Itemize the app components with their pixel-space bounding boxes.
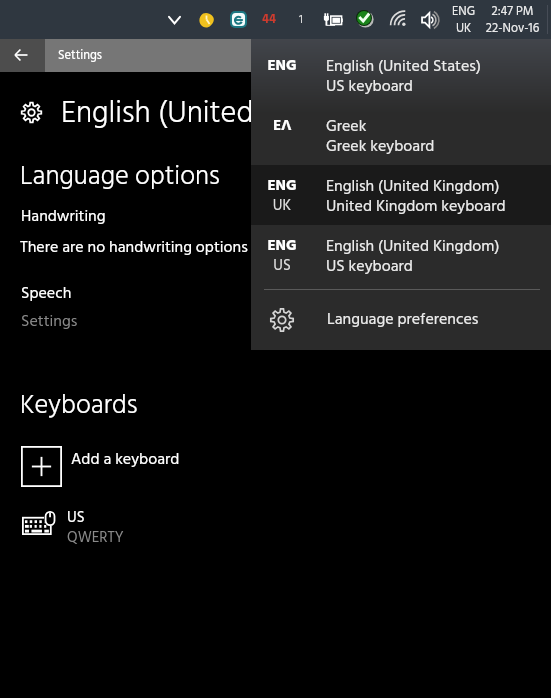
staticText: QWERTY	[67, 526, 124, 550]
button[interactable]: ENG	[448, 0, 479, 39]
staticText: ΕΛ	[242, 114, 322, 134]
button[interactable]: US	[21, 507, 236, 539]
staticText: 44	[262, 10, 277, 30]
button[interactable]: Browser	[228, 0, 248, 39]
staticText: Add a keyboard	[71, 447, 180, 473]
button[interactable]: ENG	[251, 45, 551, 105]
staticText: UK	[448, 19, 479, 39]
staticText: US	[242, 254, 322, 278]
staticText: Speech	[21, 281, 72, 307]
staticText: Language preferences	[327, 307, 479, 333]
staticText: Greek	[326, 114, 367, 140]
button[interactable]: ΕΛ	[251, 105, 551, 165]
staticText: Greek keyboard	[326, 134, 435, 160]
button[interactable]: Show hidden icons	[163, 0, 186, 39]
staticText: US keyboard	[326, 254, 413, 280]
button[interactable]: 2:47 PM	[482, 0, 543, 39]
button[interactable]: Security status OK	[355, 0, 376, 39]
button[interactable]: Back	[0, 39, 45, 72]
staticText: Settings	[58, 46, 102, 66]
button[interactable]: 44 notifications	[258, 0, 280, 39]
button[interactable]: Language preferences	[251, 290, 551, 350]
button[interactable]: Network	[389, 0, 411, 39]
staticText: English (United States)	[326, 54, 481, 80]
staticText: ENG	[242, 174, 322, 198]
staticText: United Kingdom keyboard	[326, 194, 506, 220]
button[interactable]: Add a keyboard	[21, 446, 236, 487]
staticText: 1	[299, 10, 303, 29]
staticText: Settings	[21, 309, 78, 335]
staticText: 22-Nov-16	[482, 19, 543, 39]
staticText: ENG	[242, 54, 322, 78]
staticText: US keyboard	[326, 74, 413, 100]
staticText: English (United Kingdom)	[326, 174, 500, 200]
staticText: Handwriting	[21, 204, 106, 230]
staticText: US	[67, 506, 85, 530]
staticText: ENG	[242, 234, 322, 258]
staticText: ENG	[448, 2, 479, 22]
staticText: English (United Kingdom)	[326, 234, 500, 260]
staticText: UK	[242, 194, 322, 218]
staticText: English (United States)	[61, 90, 352, 139]
button[interactable]: Notes app	[196, 0, 216, 39]
staticText: Language options	[20, 156, 220, 198]
button[interactable]: ENG	[251, 165, 551, 225]
staticText: 2:47 PM	[482, 2, 543, 22]
button[interactable]: ENG	[251, 225, 551, 285]
button[interactable]: 1 item	[293, 0, 309, 39]
staticText: There are no handwriting options for thi…	[20, 235, 370, 261]
staticText: Keyboards	[20, 385, 138, 427]
button[interactable]: Battery charging	[320, 0, 346, 39]
button[interactable]: Volume	[418, 0, 444, 39]
